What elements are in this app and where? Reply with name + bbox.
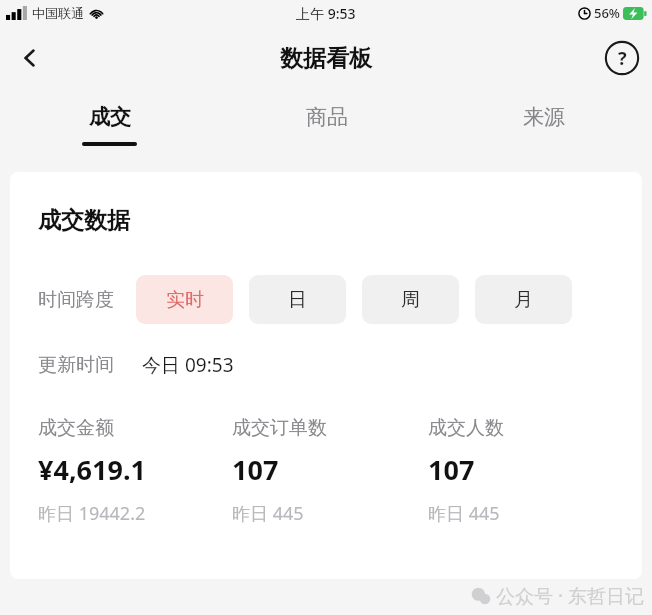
staticText: 成交金额 (38, 416, 114, 440)
staticText: 昨日 445 (232, 501, 304, 526)
button[interactable]: Help (598, 34, 646, 82)
staticText: 上午 9:53 (296, 4, 356, 23)
staticText: 中国联通 (32, 5, 84, 21)
button[interactable]: 实时 (136, 275, 233, 324)
staticText: 月 (514, 288, 533, 312)
staticText: 时间跨度 (38, 288, 114, 312)
staticText: 来源 (523, 104, 565, 130)
button[interactable]: 月 (475, 275, 572, 324)
button[interactable]: 日 (249, 275, 346, 324)
staticText: 周 (401, 288, 420, 312)
staticText: 今日 09:53 (142, 352, 234, 378)
staticText: 成交人数 (428, 416, 504, 440)
staticText: 商品 (306, 104, 348, 130)
staticText: 昨日 19442.2 (38, 501, 146, 526)
staticText: ? (618, 46, 627, 71)
staticText: 更新时间 (38, 353, 114, 377)
staticText: 数据看板 (280, 44, 372, 73)
button[interactable]: 周 (362, 275, 459, 324)
staticText: 56% (594, 4, 620, 22)
staticText: 公众号 · 东哲日记 (496, 583, 644, 609)
staticText: 日 (288, 288, 307, 312)
button[interactable]: 商品 (218, 90, 435, 162)
staticText: 成交订单数 (232, 416, 327, 440)
staticText: 成交 (89, 104, 131, 130)
staticText: 107 (428, 451, 475, 488)
staticText: 成交数据 (38, 206, 130, 235)
button[interactable]: Back (6, 34, 54, 82)
staticText: 昨日 445 (428, 501, 500, 526)
staticText: ¥4,619.1 (38, 451, 146, 488)
button[interactable]: 来源 (435, 90, 652, 162)
staticText: 实时 (166, 288, 204, 312)
button[interactable]: 成交 (0, 90, 218, 162)
staticText: 107 (232, 451, 279, 488)
